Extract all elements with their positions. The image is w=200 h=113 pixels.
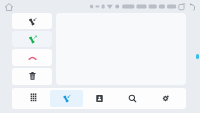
button[interactable]: Outgoing calls (12, 31, 52, 47)
button[interactable]: Call history (12, 13, 52, 29)
button[interactable]: Search (116, 90, 149, 107)
button[interactable]: Settings (149, 90, 182, 107)
button[interactable]: Home (3, 1, 14, 12)
button[interactable]: Recents (50, 90, 83, 107)
button[interactable]: Back (188, 2, 197, 11)
button[interactable]: Dialpad (16, 90, 50, 107)
button[interactable]: Missed calls (12, 49, 52, 66)
button[interactable]: Delete (12, 68, 52, 85)
button[interactable]: Contacts (83, 90, 116, 107)
